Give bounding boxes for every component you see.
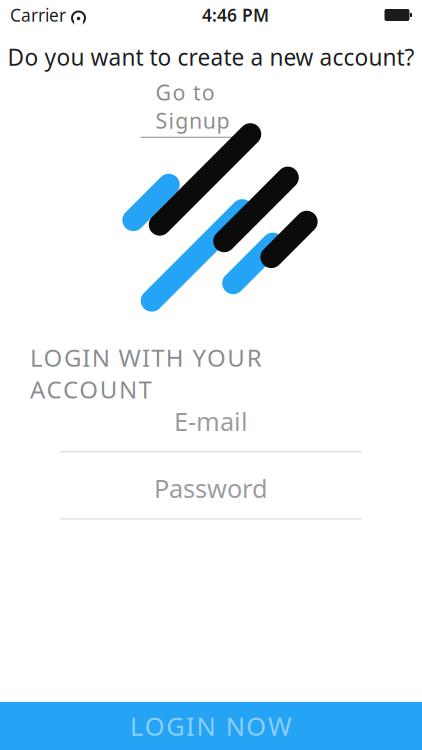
button[interactable]: LOGIN NOW: [0, 702, 422, 750]
staticText: LOGIN NOW: [130, 709, 292, 743]
staticText: E-mail: [174, 404, 248, 438]
staticText: Do you want to create a new account?: [7, 42, 414, 72]
staticText: Go to Signup: [156, 78, 230, 135]
staticText: LOGIN WITH YOUR ACCOUNT: [30, 341, 392, 373]
staticText: 4:46 PM: [202, 3, 269, 26]
staticText: Password: [154, 471, 268, 505]
staticText: [66, 3, 71, 26]
staticText: Carrier: [10, 3, 66, 26]
button[interactable]: Go to Signup: [133, 72, 289, 111]
